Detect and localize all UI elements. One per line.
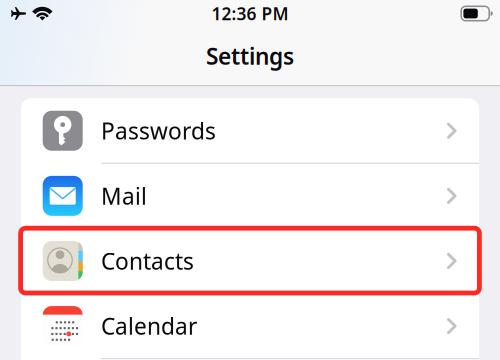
button[interactable]: Mail [21, 163, 479, 228]
staticText: 12:36 PM [211, 2, 288, 25]
button[interactable]: Notes [21, 359, 479, 360]
button[interactable]: Contacts [21, 228, 479, 293]
button[interactable]: Passwords [21, 98, 479, 163]
staticText: Mail [101, 181, 147, 211]
button[interactable]: Calendar [21, 293, 479, 359]
staticText: Calendar [101, 311, 197, 341]
staticText: Passwords [101, 116, 216, 146]
staticText: Settings [206, 41, 294, 71]
staticText: Contacts [101, 246, 194, 276]
